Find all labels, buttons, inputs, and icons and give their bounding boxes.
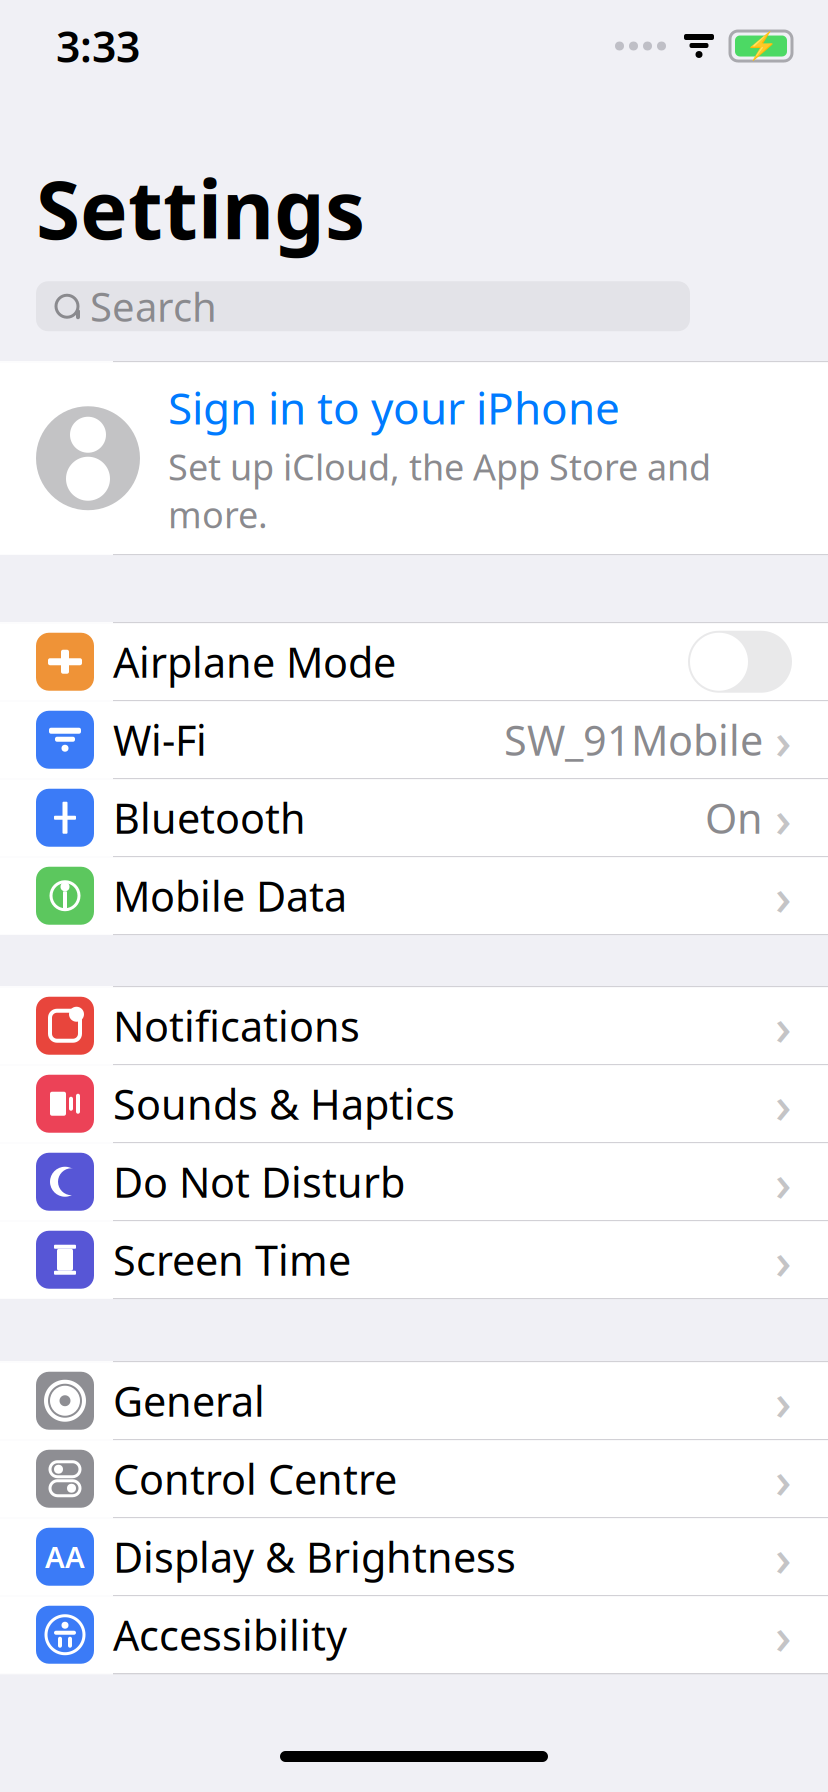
staticText: ⚡	[744, 31, 777, 61]
staticText: General	[113, 1373, 265, 1428]
button[interactable]: Search	[0, 281, 828, 331]
button[interactable]: General	[0, 1362, 828, 1439]
staticText: Notifications	[113, 998, 360, 1053]
staticText: Settings	[36, 155, 365, 261]
staticText: ›	[775, 1523, 792, 1590]
staticText: Accessibility	[113, 1607, 347, 1662]
button[interactable]: Do Not Disturb	[0, 1143, 828, 1220]
button[interactable]: Bluetooth	[0, 779, 828, 856]
staticText: Sign in to your iPhone	[168, 378, 620, 437]
staticText: ›	[775, 1070, 792, 1137]
staticText: ›	[775, 706, 792, 773]
staticText: Airplane Mode	[113, 634, 396, 689]
button[interactable]: Wi-Fi	[0, 701, 828, 778]
button[interactable]: Notifications	[0, 987, 828, 1064]
button[interactable]: Screen Time	[0, 1221, 828, 1298]
staticText: ›	[775, 784, 792, 851]
staticText: ›	[775, 1445, 792, 1512]
staticText: ›	[775, 1226, 792, 1293]
staticText: AA	[45, 1537, 85, 1576]
staticText: On	[705, 790, 763, 845]
button[interactable]: AA	[0, 1518, 828, 1595]
staticText: ›	[775, 862, 792, 929]
button[interactable]: Accessibility	[0, 1596, 828, 1673]
staticText: Bluetooth	[113, 790, 306, 845]
button[interactable]: Control Centre	[0, 1440, 828, 1517]
staticText: Mobile Data	[113, 868, 347, 923]
staticText: Wi-Fi	[113, 712, 207, 767]
button[interactable]: Sign in to your iPhone	[0, 362, 828, 554]
staticText: Control Centre	[113, 1451, 397, 1506]
staticText: Display & Brightness	[113, 1529, 516, 1584]
staticText: Search	[90, 280, 217, 333]
staticText: ›	[775, 1367, 792, 1434]
staticText: Screen Time	[113, 1232, 351, 1287]
staticText: Set up iCloud, the App Store and more.	[168, 443, 711, 538]
staticText: ›	[775, 992, 792, 1059]
button[interactable]: Mobile Data	[0, 857, 828, 934]
staticText: 3:33	[56, 18, 140, 74]
button[interactable]: Airplane Mode	[0, 623, 828, 700]
staticText: SW_91Mobile	[504, 712, 763, 767]
button[interactable]: Sounds & Haptics	[0, 1065, 828, 1142]
staticText: Do Not Disturb	[113, 1154, 405, 1209]
staticText: ›	[775, 1601, 792, 1668]
staticText: ›	[775, 1148, 792, 1215]
staticText: Sounds & Haptics	[113, 1076, 455, 1131]
